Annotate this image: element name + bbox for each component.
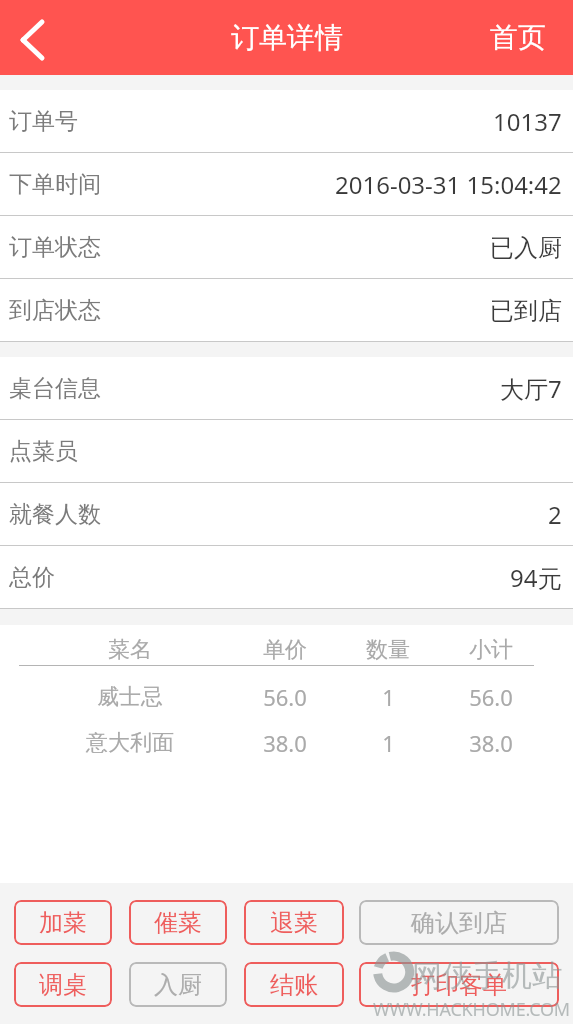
staticText: 首页 [490, 20, 546, 55]
staticText: 2 [548, 498, 562, 531]
staticText: 订单状态 [9, 233, 101, 262]
button[interactable]: 总价 [0, 546, 573, 609]
staticText: 小计 [469, 636, 513, 664]
staticText: 退菜 [270, 908, 318, 938]
staticText: 确认到店 [411, 908, 507, 938]
staticText: 38.0 [263, 728, 307, 758]
button[interactable]: 威士忌 [0, 674, 573, 720]
button[interactable]: 催菜 [129, 900, 227, 945]
staticText: 56.0 [469, 682, 513, 712]
staticText: WWW.HACKHOME.COM [373, 997, 570, 1022]
staticText: 意大利面 [86, 729, 174, 757]
button[interactable]: 退菜 [244, 900, 344, 945]
staticText: 2016-03-31 15:04:42 [335, 168, 562, 201]
button[interactable]: 点菜员 [0, 420, 573, 483]
button[interactable]: 加菜 [14, 900, 112, 945]
staticText: 菜名 [108, 636, 152, 664]
staticText: 56.0 [263, 682, 307, 712]
button[interactable]: 意大利面 [0, 720, 573, 766]
button[interactable]: 打印客单 [359, 962, 559, 1007]
button[interactable]: 结账 [244, 962, 344, 1007]
staticText: 打印客单 [411, 970, 507, 1000]
button[interactable]: 首页 [480, 12, 556, 63]
staticText: 就餐人数 [9, 500, 101, 529]
button[interactable]: 下单时间 [0, 153, 573, 216]
staticText: 加菜 [39, 908, 87, 938]
staticText: 桌台信息 [9, 374, 101, 403]
staticText: 调桌 [39, 970, 87, 1000]
button[interactable]: 调桌 [14, 962, 112, 1007]
staticText: 94元 [510, 561, 562, 594]
staticText: 订单号 [9, 107, 78, 136]
staticText: 下单时间 [9, 170, 101, 199]
button[interactable]: 确认到店 [359, 900, 559, 945]
staticText: 网侠手机站 [412, 957, 562, 995]
button[interactable]: 订单号 [0, 90, 573, 153]
button[interactable]: 桌台信息 [0, 357, 573, 420]
staticText: 1 [382, 682, 395, 712]
staticText: 已到店 [490, 296, 562, 326]
staticText: 催菜 [154, 908, 202, 938]
staticText: 1 [382, 728, 395, 758]
button[interactable]: 到店状态 [0, 279, 573, 342]
staticText: 已入厨 [490, 233, 562, 263]
staticText: 10137 [493, 105, 562, 138]
staticText: 结账 [270, 970, 318, 1000]
button[interactable]: 入厨 [129, 962, 227, 1007]
staticText: 单价 [263, 636, 307, 664]
staticText: 大厅7 [500, 372, 562, 405]
staticText: 数量 [366, 636, 410, 664]
staticText: 点菜员 [9, 437, 78, 466]
staticText: 入厨 [154, 970, 202, 1000]
button[interactable]: 就餐人数 [0, 483, 573, 546]
staticText: 总价 [9, 563, 55, 592]
button[interactable]: Back [0, 7, 62, 69]
button[interactable]: 菜名 [0, 635, 573, 665]
button[interactable]: 订单状态 [0, 216, 573, 279]
staticText: 到店状态 [9, 296, 101, 325]
staticText: 威士忌 [97, 683, 163, 711]
staticText: 订单详情 [231, 20, 343, 55]
staticText: 38.0 [469, 728, 513, 758]
